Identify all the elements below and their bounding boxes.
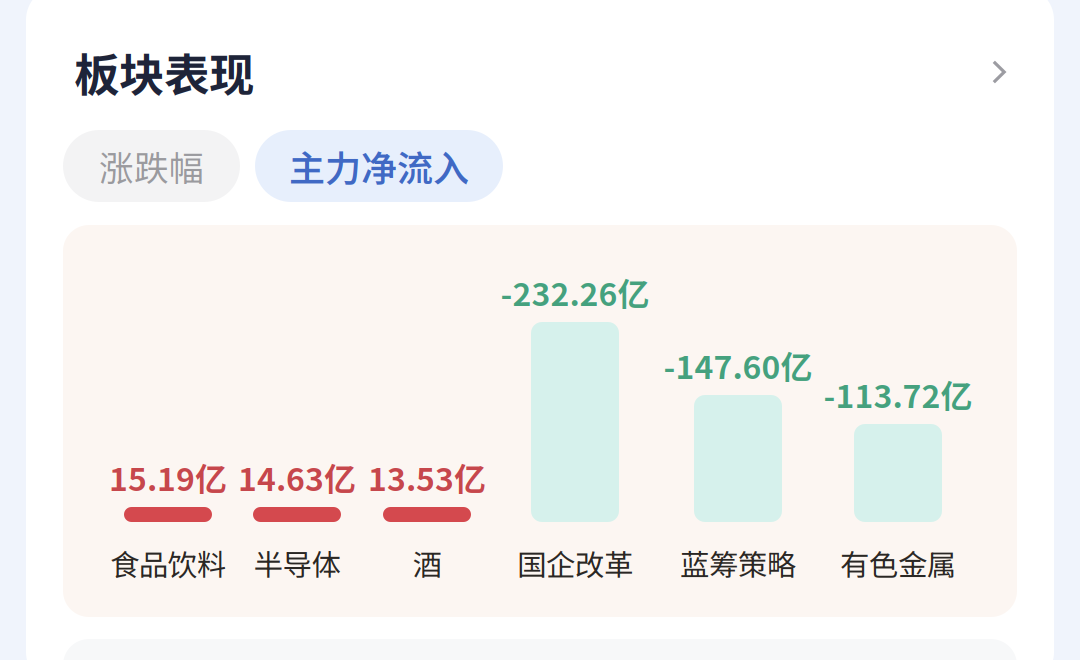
staticText: 食品饮料 <box>110 542 226 584</box>
staticText: -232.26亿 <box>500 269 649 315</box>
staticText: 涨跌幅 <box>99 141 204 191</box>
staticText: -147.60亿 <box>663 342 812 388</box>
staticText: 有色金属 <box>840 542 956 584</box>
button[interactable]: 板块表现 <box>26 14 1054 130</box>
staticText: 酒 <box>412 542 441 584</box>
staticText: 半导体 <box>253 542 340 584</box>
staticText: 15.19亿 <box>109 454 227 500</box>
button[interactable]: 主力净流入 <box>255 130 503 202</box>
staticText: 13.53亿 <box>368 454 486 500</box>
staticText: 蓝筹策略 <box>680 542 796 584</box>
staticText: 板块表现 <box>74 39 254 105</box>
staticText: 国企改革 <box>517 542 633 584</box>
staticText: 14.63亿 <box>238 454 356 500</box>
button[interactable]: 涨跌幅 <box>63 130 240 202</box>
staticText: 主力净流入 <box>289 140 469 192</box>
staticText: -113.72亿 <box>823 371 972 417</box>
